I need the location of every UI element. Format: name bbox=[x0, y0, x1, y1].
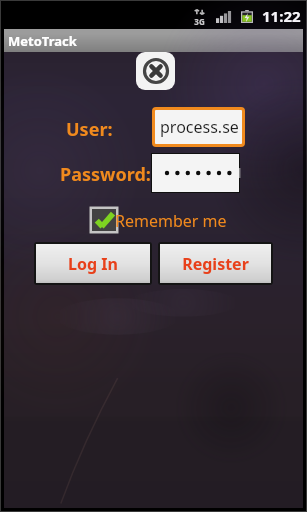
button[interactable]: Remember me bbox=[89, 206, 119, 234]
staticText: Register bbox=[182, 253, 249, 275]
staticText: Password: bbox=[60, 162, 151, 187]
button[interactable]: process.se bbox=[155, 110, 242, 144]
staticText: MetoTrack bbox=[8, 32, 77, 50]
button[interactable]: Close bbox=[136, 52, 175, 90]
button[interactable]: Log In bbox=[36, 244, 150, 283]
staticText: 11:22 bbox=[262, 6, 301, 26]
staticText: Log In bbox=[68, 253, 118, 275]
staticText: User: bbox=[66, 117, 113, 142]
staticText: Remember me bbox=[115, 210, 227, 232]
button[interactable] bbox=[152, 154, 239, 192]
staticText: 3G bbox=[194, 16, 205, 27]
button[interactable]: Register bbox=[160, 244, 271, 283]
staticText: process.se bbox=[160, 116, 239, 138]
